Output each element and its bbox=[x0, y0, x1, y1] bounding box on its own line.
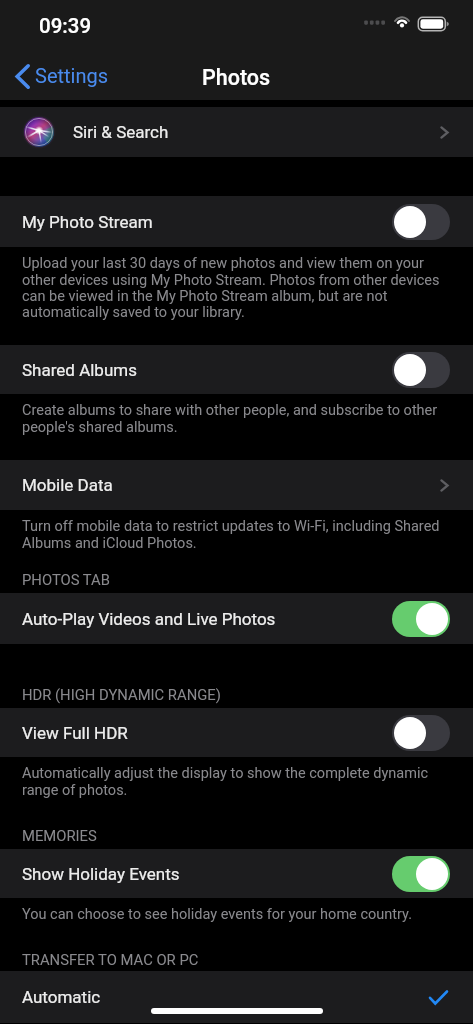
button[interactable]: Off bbox=[392, 715, 450, 751]
button[interactable]: My Photo Stream bbox=[0, 196, 473, 247]
other: Back bbox=[15, 64, 30, 89]
button[interactable]: Shared Albums bbox=[0, 345, 473, 394]
staticText: Turn off mobile data to restrict updates… bbox=[22, 518, 449, 551]
other: Selected bbox=[429, 990, 448, 1005]
staticText: My Photo Stream bbox=[22, 212, 392, 232]
staticText: Siri & Search bbox=[73, 122, 440, 142]
button[interactable]: On bbox=[392, 601, 450, 637]
button[interactable]: View Full HDR bbox=[0, 708, 473, 757]
staticText: Automatic bbox=[22, 987, 429, 1007]
staticText: Shared Albums bbox=[22, 360, 392, 380]
staticText: MEMORIES bbox=[22, 827, 97, 844]
staticText: PHOTOS TAB bbox=[22, 571, 110, 588]
button[interactable]: Off bbox=[392, 352, 450, 388]
button[interactable]: Automatic bbox=[0, 971, 473, 1023]
staticText: Mobile Data bbox=[22, 475, 440, 495]
button[interactable]: Back bbox=[0, 56, 119, 93]
staticText: Create albums to share with other people… bbox=[22, 402, 449, 435]
staticText: TRANSFER TO MAC OR PC bbox=[22, 951, 199, 968]
staticText: Photos bbox=[202, 65, 271, 90]
staticText: HDR (HIGH DYNAMIC RANGE) bbox=[22, 686, 221, 703]
button[interactable]: Siri & Search bbox=[0, 107, 473, 157]
button[interactable]: Show Holiday Events bbox=[0, 849, 473, 898]
staticText: Show Holiday Events bbox=[22, 864, 392, 884]
staticText: You can choose to see holiday events for… bbox=[22, 906, 412, 923]
staticText: Auto-Play Videos and Live Photos bbox=[22, 609, 392, 629]
button[interactable]: Mobile Data bbox=[0, 460, 473, 510]
staticText: Settings bbox=[35, 64, 109, 87]
button[interactable]: Auto-Play Videos and Live Photos bbox=[0, 593, 473, 644]
staticText: 09:39 bbox=[39, 14, 92, 38]
staticText: Automatically adjust the display to show… bbox=[22, 765, 449, 798]
staticText: Upload your last 30 days of new photos a… bbox=[22, 255, 449, 320]
button[interactable]: On bbox=[392, 856, 450, 892]
staticText: View Full HDR bbox=[22, 723, 392, 743]
button[interactable]: Off bbox=[392, 204, 450, 240]
